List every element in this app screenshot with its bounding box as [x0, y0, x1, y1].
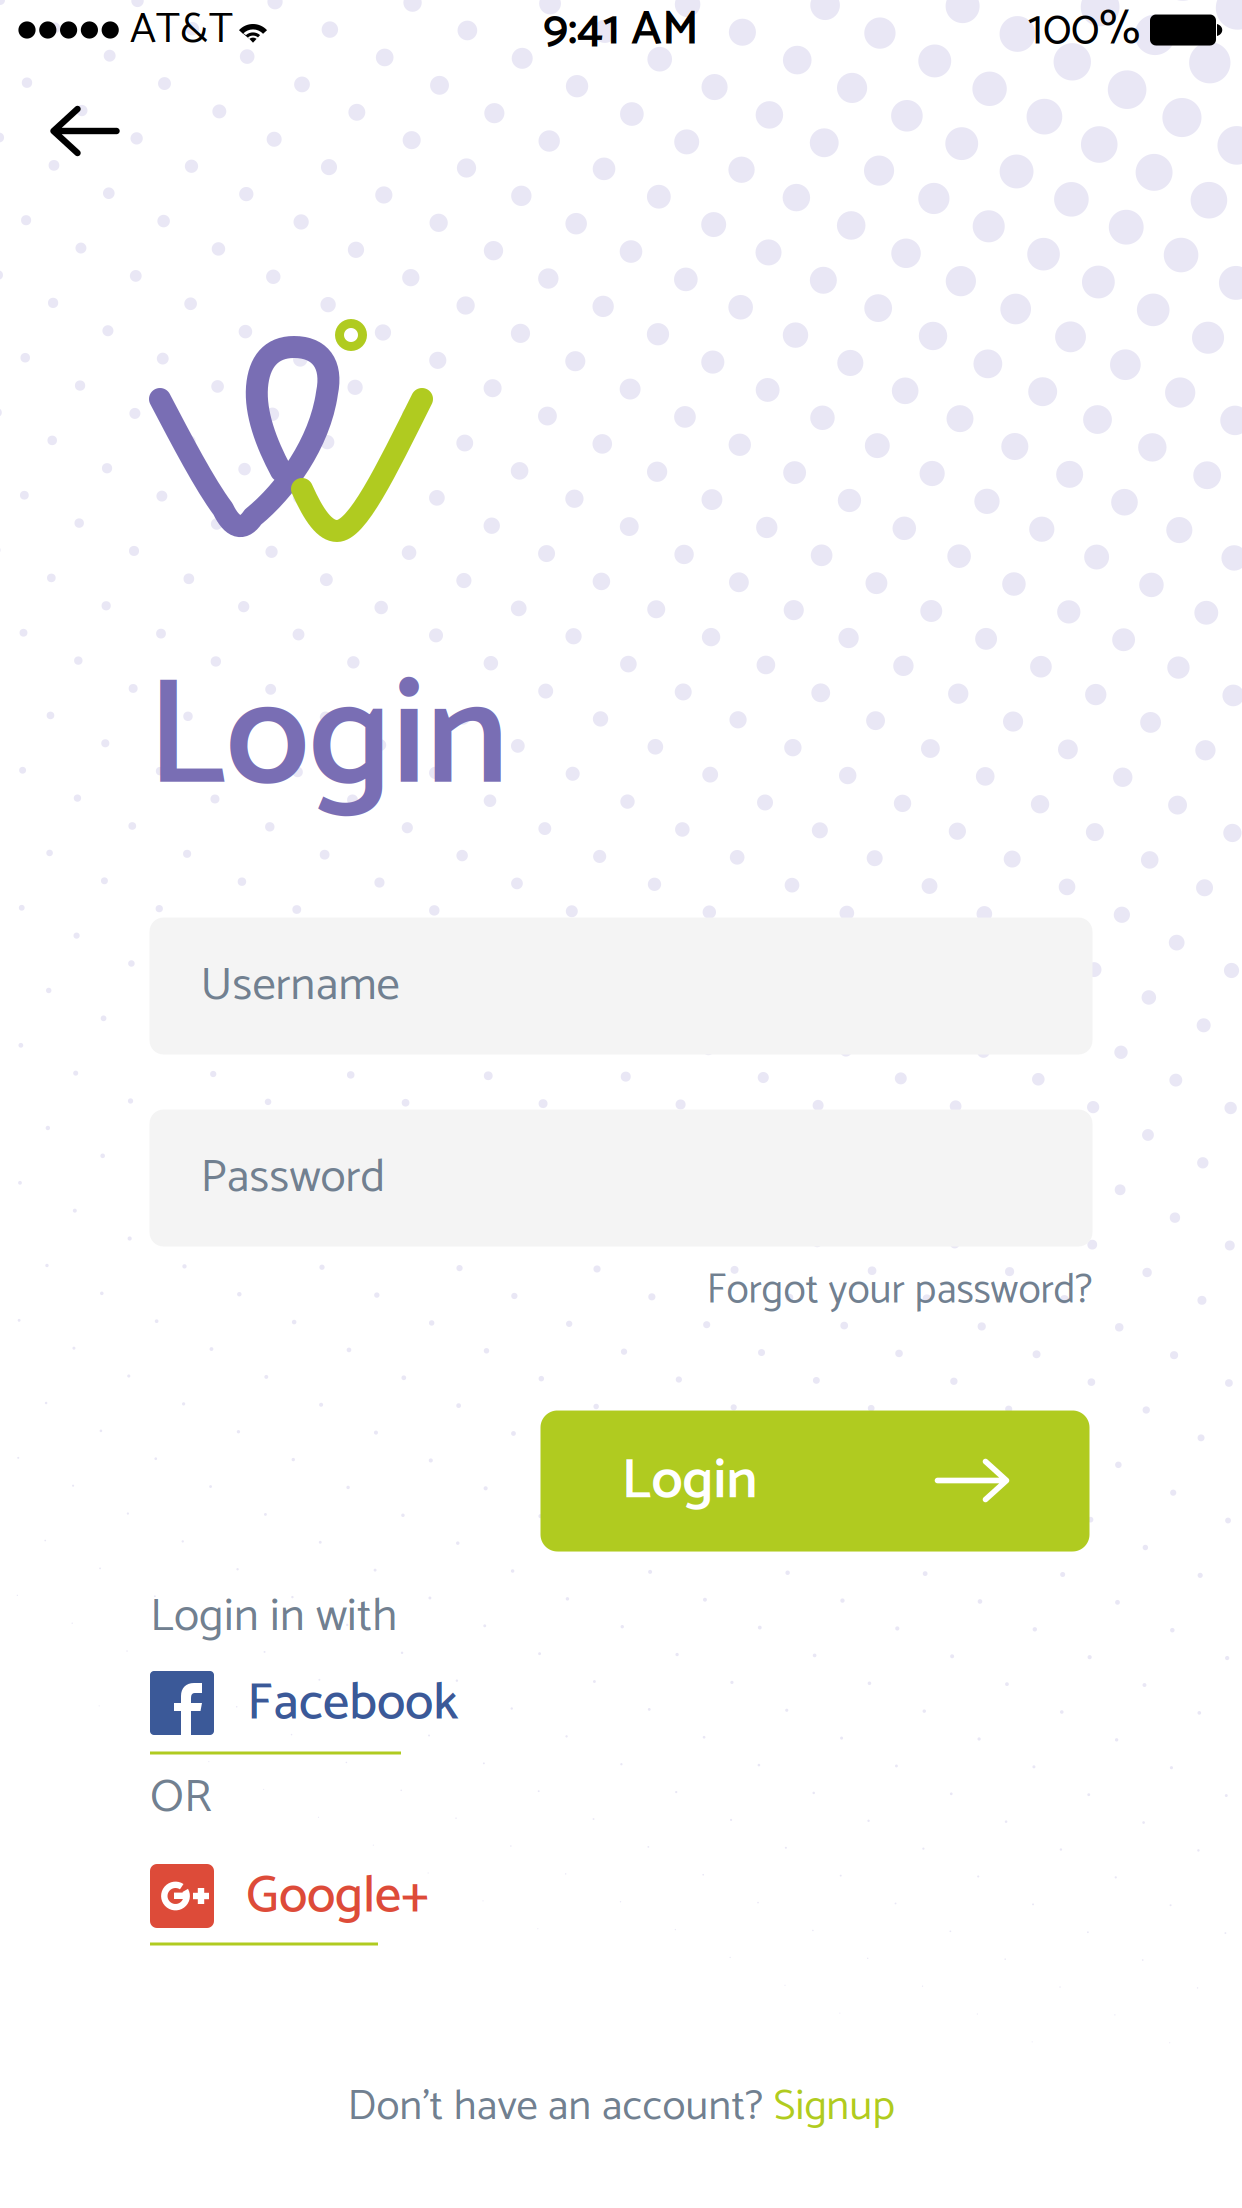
button[interactable]: Login — [540, 1410, 1089, 1551]
button[interactable]: Facebook — [150, 1671, 580, 1771]
staticText: Facebook — [247, 1661, 458, 1747]
button[interactable]: Username — [149, 917, 1092, 1054]
button[interactable]: Password — [149, 1109, 1092, 1246]
staticText: Don’t have an account? — [347, 2072, 773, 2142]
staticText: 9:41 AM — [543, 0, 699, 69]
staticText: Login in with — [150, 1579, 397, 1655]
button[interactable]: Forgot your password? — [149, 1254, 1092, 1328]
button[interactable]: Don’t have an account? — [317, 2064, 924, 2150]
button[interactable]: Back — [0, 66, 170, 196]
staticText: Forgot your password? — [706, 1257, 1092, 1325]
staticText: OR — [150, 1760, 212, 1836]
staticText: Google+ — [246, 1854, 429, 1940]
staticText: Username — [200, 948, 399, 1024]
staticText: Login — [621, 1436, 757, 1527]
staticText: 100% — [1028, 0, 1140, 69]
staticText: Password — [200, 1140, 385, 1216]
staticText: Login — [147, 617, 509, 862]
staticText: Signup — [773, 2072, 894, 2142]
button[interactable]: Google+ — [150, 1865, 580, 1965]
staticText: AT&T — [130, 0, 233, 65]
